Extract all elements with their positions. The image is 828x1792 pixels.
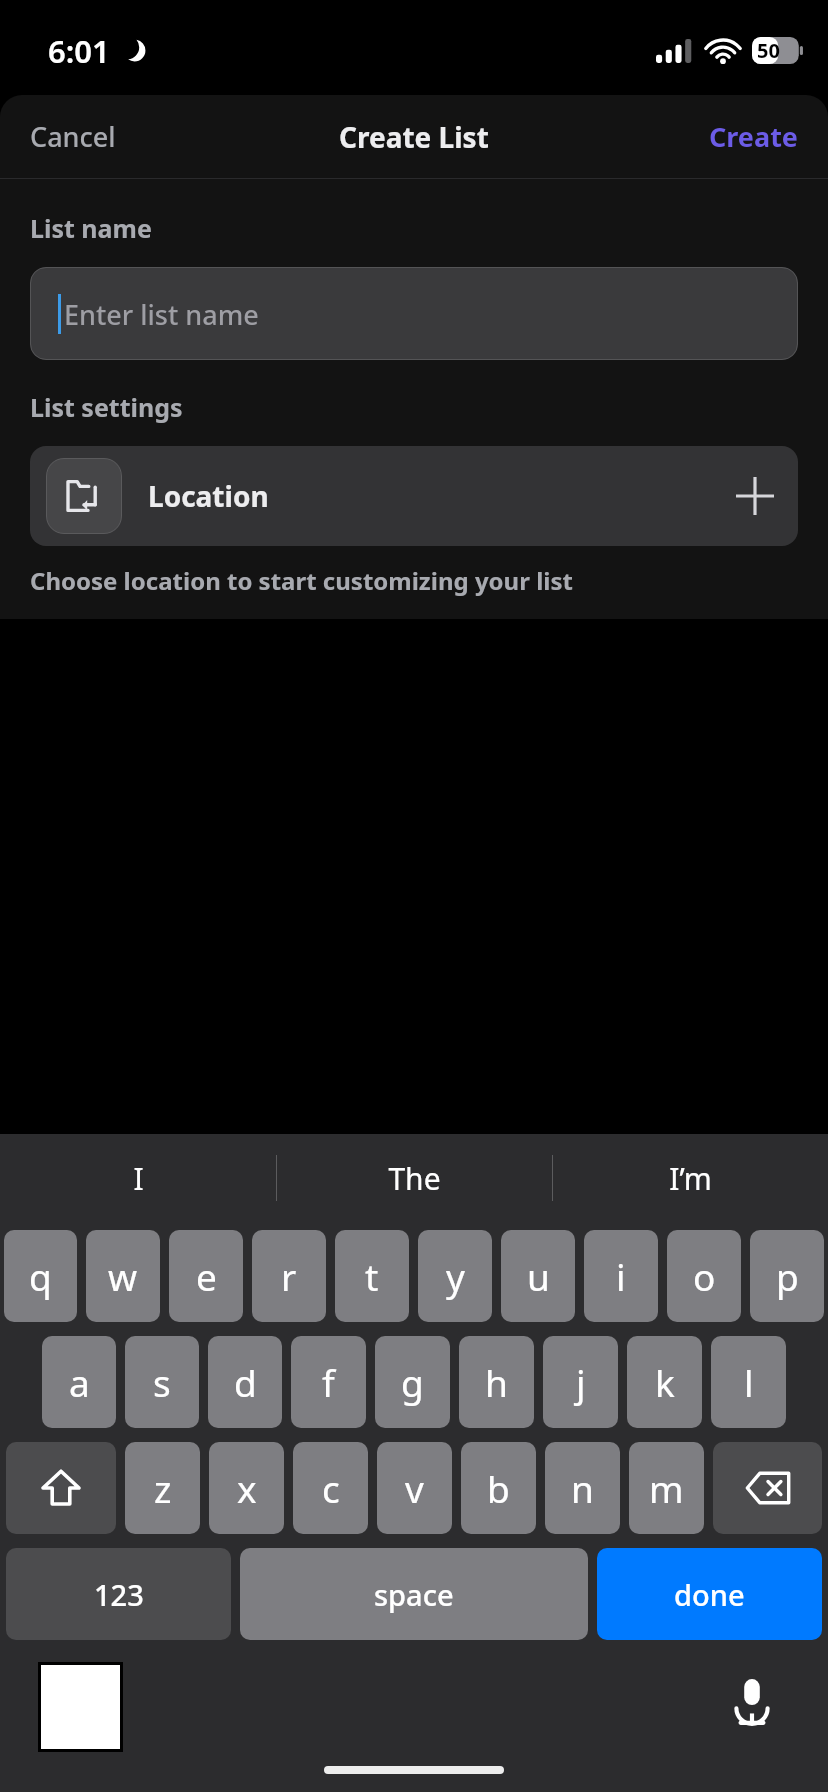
button[interactable]: t: [335, 1230, 409, 1322]
staticText: Location: [148, 477, 269, 515]
button[interactable]: l: [711, 1336, 786, 1428]
button[interactable]: f: [291, 1336, 366, 1428]
staticText: Choose location to start customizing you…: [30, 564, 573, 597]
staticText: g: [401, 1357, 424, 1407]
staticText: s: [153, 1357, 171, 1407]
staticText: w: [108, 1251, 138, 1301]
button[interactable]: Location: [30, 446, 798, 546]
button[interactable]: q: [4, 1230, 77, 1322]
staticText: r: [281, 1251, 297, 1301]
button[interactable]: y: [418, 1230, 492, 1322]
staticText: a: [69, 1357, 90, 1407]
button[interactable]: Enter list name: [30, 267, 798, 360]
button[interactable]: The: [277, 1134, 552, 1222]
staticText: u: [527, 1251, 550, 1301]
staticText: List settings: [30, 390, 183, 424]
button[interactable]: g: [375, 1336, 450, 1428]
button[interactable]: Shift: [6, 1442, 116, 1534]
staticText: space: [374, 1575, 454, 1614]
button[interactable]: Create: [679, 104, 828, 169]
button[interactable]: z: [125, 1442, 200, 1534]
button[interactable]: n: [545, 1442, 620, 1534]
staticText: Create: [709, 118, 798, 155]
button[interactable]: j: [543, 1336, 618, 1428]
staticText: Cancel: [30, 118, 116, 155]
button[interactable]: m: [629, 1442, 704, 1534]
button[interactable]: d: [208, 1336, 282, 1428]
staticText: k: [655, 1357, 675, 1407]
staticText: The: [388, 1158, 441, 1199]
button[interactable]: e: [169, 1230, 243, 1322]
button[interactable]: Add location: [728, 469, 782, 523]
button[interactable]: a: [42, 1336, 116, 1428]
staticText: t: [365, 1251, 379, 1301]
staticText: Enter list name: [64, 296, 259, 333]
staticText: l: [744, 1357, 754, 1407]
button[interactable]: v: [377, 1442, 452, 1534]
button[interactable]: I’m: [553, 1134, 828, 1222]
staticText: 50: [757, 37, 780, 64]
staticText: List name: [30, 211, 152, 245]
button[interactable]: done: [597, 1548, 822, 1640]
staticText: f: [322, 1357, 335, 1407]
staticText: v: [405, 1463, 424, 1513]
button[interactable]: 123: [6, 1548, 231, 1640]
staticText: x: [237, 1463, 257, 1513]
button[interactable]: i: [584, 1230, 658, 1322]
staticText: p: [776, 1251, 799, 1301]
button[interactable]: s: [125, 1336, 199, 1428]
staticText: c: [322, 1463, 340, 1513]
staticText: e: [196, 1251, 217, 1301]
staticText: y: [446, 1251, 465, 1301]
staticText: h: [485, 1357, 508, 1407]
button[interactable]: space: [240, 1548, 588, 1640]
button[interactable]: o: [667, 1230, 741, 1322]
button[interactable]: w: [86, 1230, 160, 1322]
button[interactable]: c: [293, 1442, 368, 1534]
button[interactable]: k: [627, 1336, 702, 1428]
staticText: j: [576, 1357, 586, 1407]
button[interactable]: b: [461, 1442, 536, 1534]
button[interactable]: r: [252, 1230, 326, 1322]
staticText: done: [674, 1575, 745, 1614]
button[interactable]: I: [0, 1134, 276, 1222]
staticText: i: [616, 1251, 626, 1301]
staticText: b: [487, 1463, 510, 1513]
staticText: I’m: [669, 1158, 712, 1199]
staticText: 123: [94, 1575, 144, 1614]
staticText: z: [154, 1463, 172, 1513]
staticText: Create List: [339, 118, 489, 156]
button[interactable]: Cancel: [0, 104, 146, 169]
button[interactable]: h: [459, 1336, 534, 1428]
staticText: n: [571, 1463, 594, 1513]
staticText: 6:01: [48, 30, 110, 72]
staticText: o: [693, 1251, 716, 1301]
button[interactable]: x: [209, 1442, 284, 1534]
staticText: q: [29, 1251, 52, 1301]
staticText: I: [133, 1158, 144, 1199]
button[interactable]: u: [501, 1230, 575, 1322]
button[interactable]: p: [750, 1230, 824, 1322]
button[interactable]: Dictation: [716, 1666, 788, 1738]
button[interactable]: Backspace: [713, 1442, 822, 1534]
staticText: d: [234, 1357, 257, 1407]
staticText: m: [649, 1463, 684, 1513]
